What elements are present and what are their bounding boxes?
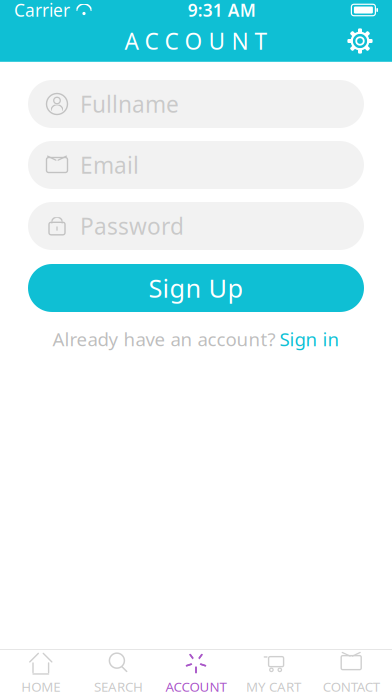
staticText: ACCOUNT [165,678,226,695]
staticText: SEARCH [94,678,143,695]
button[interactable]: HOME [2,650,80,696]
button[interactable]: CONTACT [312,650,390,696]
button[interactable]: Settings [338,20,382,62]
staticText: CONTACT [323,678,380,695]
button[interactable]: SEARCH [80,650,157,696]
button[interactable]: Sign Up [28,264,364,312]
staticText: Fullname [80,89,179,119]
staticText: HOME [21,678,60,695]
button[interactable]: ACCOUNT [157,650,235,696]
staticText: Sign Up [148,271,243,305]
staticText: MY CART [246,678,301,695]
staticText: Carrier [14,0,70,21]
staticText: Already have an account? [52,327,275,351]
button[interactable]: Already have an account? [28,328,364,350]
staticText: A C C O U N T [124,26,267,56]
staticText: Email [80,150,139,180]
staticText: Password [80,211,184,241]
button[interactable]: MY CART [235,650,312,696]
staticText: 9:31 AM [188,0,256,21]
staticText: Sign in [279,327,339,351]
